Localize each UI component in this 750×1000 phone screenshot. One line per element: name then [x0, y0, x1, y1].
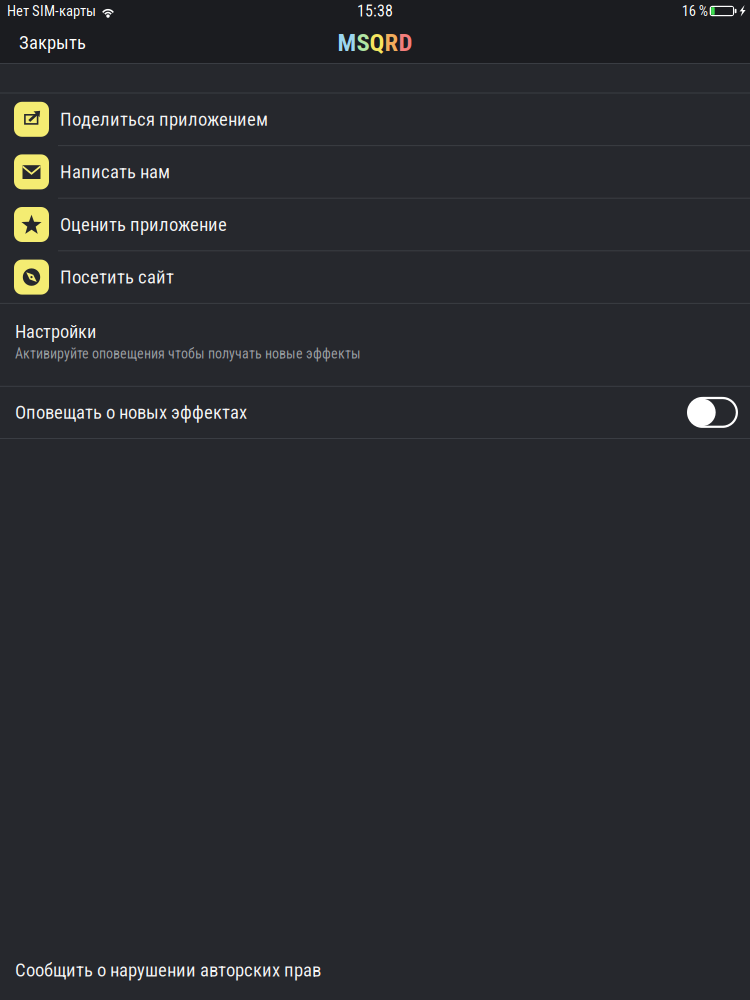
- button[interactable]: Оповещать о новых эффектах: [0, 387, 750, 439]
- button[interactable]: Закрыть: [0, 22, 100, 63]
- staticText: 15:38: [357, 2, 393, 20]
- staticText: D: [398, 28, 412, 57]
- button[interactable]: Поделиться приложением: [0, 93, 750, 146]
- staticText: Написать нам: [60, 161, 170, 183]
- button[interactable]: Написать нам: [0, 146, 750, 199]
- staticText: Нет SIM-карты: [7, 2, 96, 20]
- staticText: M: [337, 28, 356, 57]
- button[interactable]: Оценить приложение: [0, 199, 750, 251]
- staticText: Оценить приложение: [60, 214, 227, 235]
- staticText: Закрыть: [19, 32, 86, 53]
- button[interactable]: Посетить сайт: [0, 251, 750, 304]
- staticText: S: [356, 28, 369, 57]
- staticText: Поделиться приложением: [60, 108, 268, 130]
- staticText: Сообщить о нарушении авторских прав: [15, 959, 321, 981]
- staticText: Активируйте оповещения чтобы получать но…: [15, 345, 361, 362]
- staticText: Посетить сайт: [60, 266, 174, 288]
- staticText: R: [384, 28, 398, 57]
- staticText: Оповещать о новых эффектах: [15, 401, 247, 423]
- button[interactable]: Сообщить о нарушении авторских прав: [0, 940, 750, 1000]
- staticText: Настройки: [15, 321, 96, 342]
- staticText: 16 %: [682, 2, 708, 20]
- staticText: Q: [369, 28, 384, 57]
